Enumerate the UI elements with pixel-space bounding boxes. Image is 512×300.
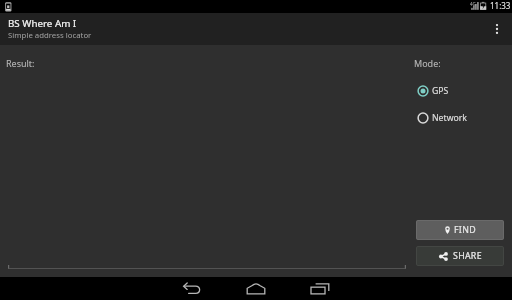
button[interactable]: More options xyxy=(483,13,511,45)
button[interactable]: Back xyxy=(171,277,213,300)
staticText: Result: xyxy=(6,57,35,69)
staticText: GPS xyxy=(432,85,449,97)
button[interactable]: Home xyxy=(235,277,277,300)
button[interactable]: GPS xyxy=(415,83,507,99)
staticText: Mode: xyxy=(414,57,441,69)
staticText: BS Where Am I xyxy=(8,17,77,30)
button[interactable]: FIND xyxy=(416,220,504,240)
staticText: Simple address locator xyxy=(8,30,92,41)
staticText: 4G xyxy=(470,1,476,7)
staticText: Network xyxy=(432,112,467,124)
button[interactable]: SHARE xyxy=(416,246,504,266)
button[interactable]: Network xyxy=(415,110,507,126)
button[interactable]: Recent apps xyxy=(299,277,341,300)
staticText: 11:33 xyxy=(490,0,511,11)
staticText: FIND xyxy=(454,224,476,236)
staticText: SHARE xyxy=(453,250,482,262)
